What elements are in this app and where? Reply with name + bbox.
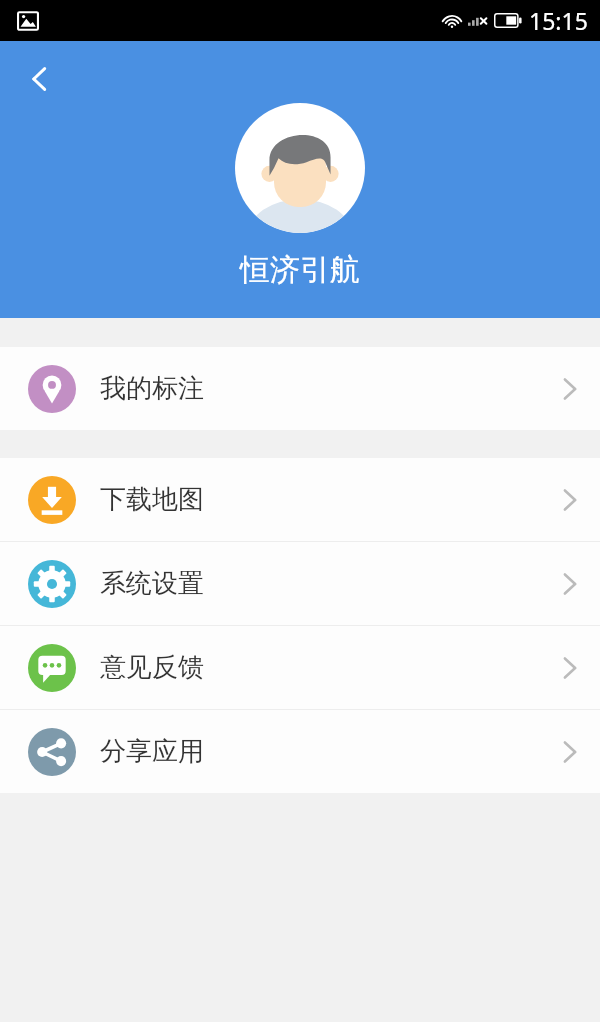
button[interactable]: 系统设置 [0,542,600,625]
button[interactable]: 分享应用 [0,710,600,793]
button[interactable]: 意见反馈 [0,626,600,709]
button[interactable]: Back [14,53,66,105]
staticText: 15:15 [529,5,588,36]
staticText: 分享应用 [100,735,562,768]
staticText: 恒济引航 [240,251,360,289]
button[interactable]: Profile avatar [235,103,365,233]
staticText: 下载地图 [100,483,562,516]
button[interactable]: 我的标注 [0,347,600,430]
button[interactable]: 下载地图 [0,458,600,541]
staticText: 系统设置 [100,567,562,600]
staticText: 我的标注 [100,372,562,405]
staticText: 意见反馈 [100,651,562,684]
